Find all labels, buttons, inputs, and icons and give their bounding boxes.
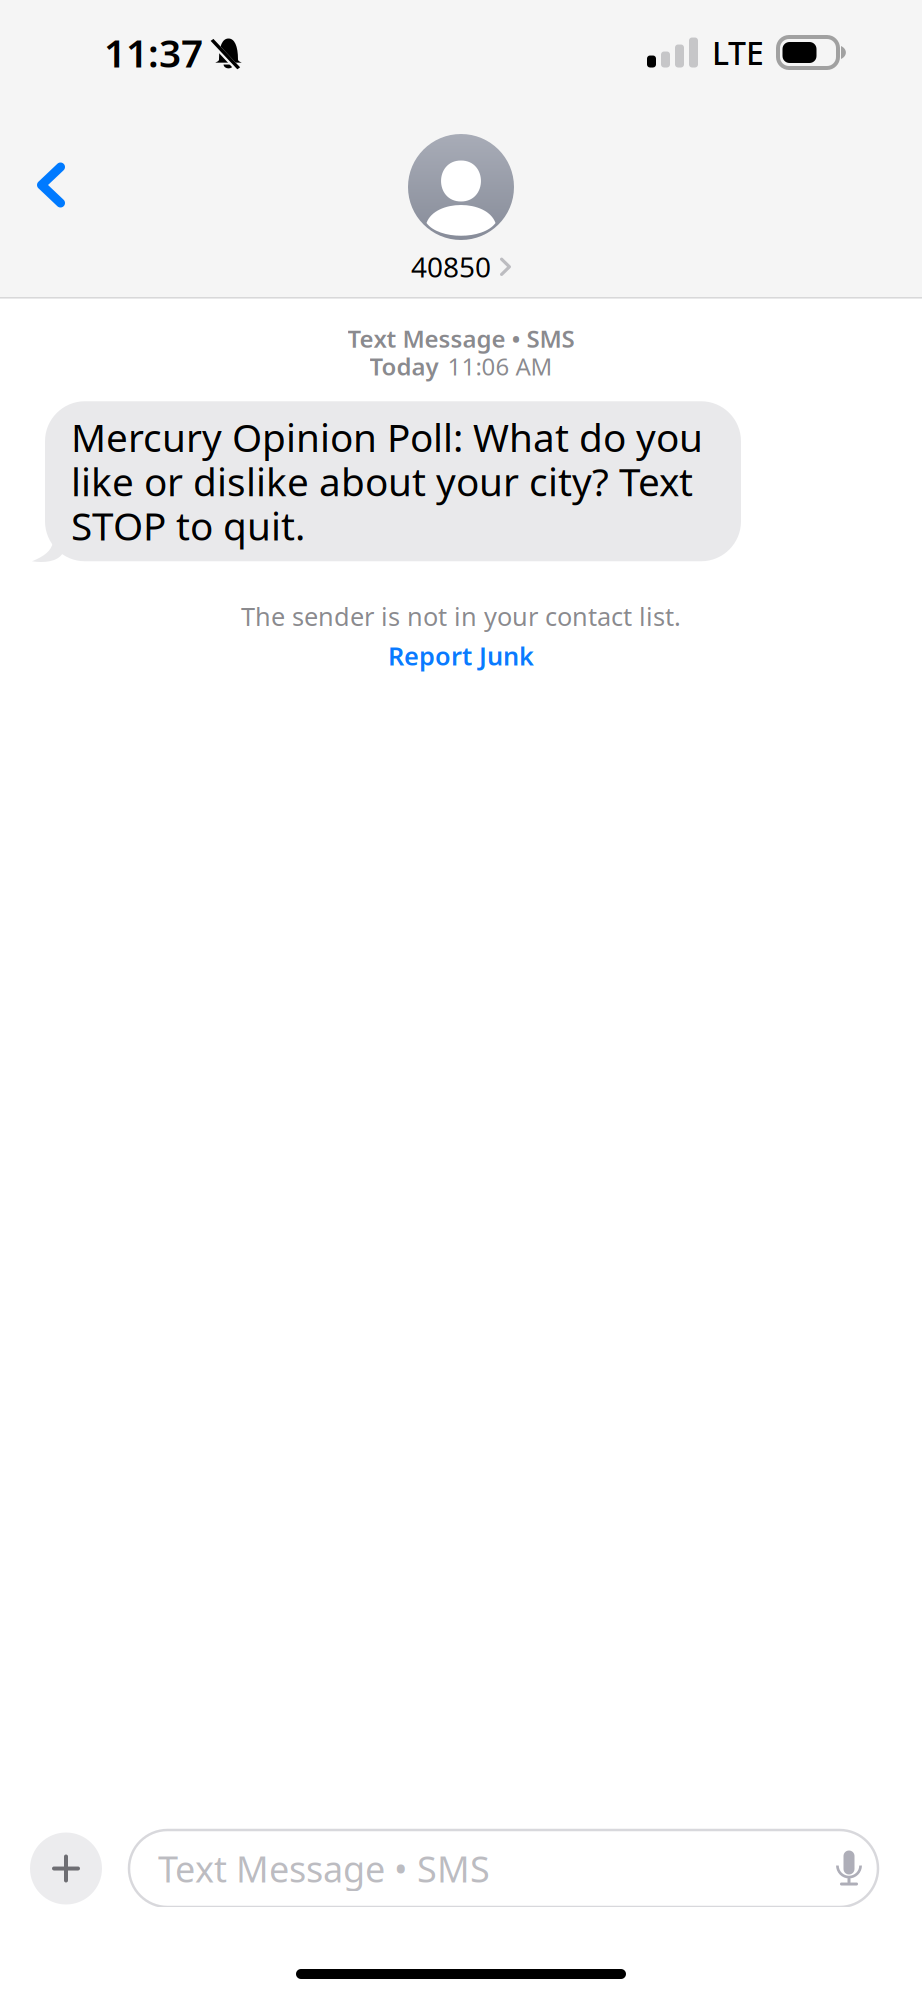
staticText: The sender is not in your contact list. [241,599,681,633]
button[interactable]: Text Message [129,1830,878,1907]
staticText: Mercury Opinion Poll: What do you like o… [71,411,703,551]
staticText: 11:37 [104,27,203,78]
button[interactable]: Add attachment [30,1832,102,1904]
staticText: Text Message • SMS [158,1845,490,1892]
staticText: 40850 [411,248,491,285]
button[interactable]: Report Junk [378,636,544,675]
staticText: 11:06 AM [447,350,552,382]
staticText: LTE [712,31,764,74]
button[interactable]: Back [3,137,99,233]
staticText: Text Message • SMS [347,322,574,354]
staticText: Report Junk [388,639,534,672]
staticText: Today [369,350,438,382]
button[interactable]: 40850 [408,134,514,285]
